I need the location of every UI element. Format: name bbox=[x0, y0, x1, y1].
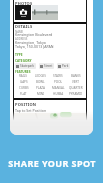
staticText: Street bbox=[44, 64, 53, 68]
staticText: Skatepark bbox=[20, 64, 35, 68]
staticText: NAME bbox=[15, 30, 24, 34]
button[interactable]: MINI bbox=[32, 92, 49, 96]
staticText: QUARTER bbox=[69, 86, 83, 90]
staticText: PHOTOS bbox=[15, 1, 33, 6]
staticText: PYRAMID bbox=[69, 92, 83, 96]
staticText: GAPS bbox=[20, 80, 28, 84]
staticText: FLAT bbox=[20, 92, 27, 96]
button[interactable]: HUBBA bbox=[49, 92, 67, 96]
staticText: PLAZA bbox=[36, 86, 45, 90]
button[interactable]: Skatepark bbox=[15, 63, 36, 69]
button[interactable]: BOWL bbox=[32, 80, 49, 84]
staticText: CATEGORY bbox=[15, 59, 32, 63]
button[interactable]: Park bbox=[57, 63, 70, 69]
staticText: DETAILS bbox=[15, 24, 33, 29]
button[interactable]: POOL bbox=[49, 80, 67, 84]
button[interactable]: STAIRS bbox=[49, 74, 67, 78]
button[interactable]: GAPS bbox=[15, 80, 32, 84]
staticText: MANUAL bbox=[52, 86, 65, 90]
staticText: BANKS bbox=[71, 74, 81, 78]
button[interactable]: VERT bbox=[67, 80, 85, 84]
staticText: Kensington, Tokyo bbox=[15, 40, 46, 45]
button[interactable]: FLAT bbox=[15, 92, 32, 96]
button[interactable]: PYRAMID bbox=[67, 92, 85, 96]
button[interactable]: MANUAL bbox=[49, 86, 67, 90]
staticText: Tokyo, 150-0013 JAPAN bbox=[15, 44, 54, 49]
staticText: POOL bbox=[54, 80, 63, 84]
staticText: MINI bbox=[37, 92, 45, 96]
button[interactable]: LEDGES bbox=[32, 74, 49, 78]
button[interactable]: QUARTER bbox=[67, 86, 85, 90]
button[interactable]: RAILS bbox=[15, 74, 32, 78]
staticText: FEATURES bbox=[15, 70, 31, 74]
button[interactable]: PLAZA bbox=[32, 86, 49, 90]
button[interactable]: CURBS bbox=[15, 86, 32, 90]
staticText: STAIRS bbox=[53, 74, 63, 78]
staticText: HUBBA bbox=[53, 92, 64, 96]
staticText: BOWL bbox=[36, 80, 45, 84]
staticText: ADDRESS bbox=[15, 37, 28, 41]
staticText: POSITION bbox=[15, 102, 37, 107]
staticText: Tap to Set Position bbox=[15, 108, 47, 113]
staticText: CURBS bbox=[19, 86, 29, 90]
staticText: RAILS bbox=[19, 74, 28, 78]
button[interactable]: Street bbox=[39, 63, 54, 69]
staticText: SHARE YOUR SPOT bbox=[8, 157, 96, 169]
staticText: TYPE bbox=[15, 53, 23, 57]
button[interactable]: Add photo bbox=[15, 5, 31, 20]
button[interactable]: BANKS bbox=[67, 74, 85, 78]
staticText: Kensington Boulevard bbox=[15, 32, 53, 37]
staticText: Park bbox=[62, 64, 69, 68]
staticText: LEDGES bbox=[35, 74, 46, 78]
staticText: VERT bbox=[72, 80, 80, 84]
